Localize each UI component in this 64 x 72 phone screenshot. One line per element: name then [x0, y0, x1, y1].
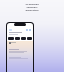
button[interactable] [15, 37, 20, 40]
staticText: AI-Powered Summary Generation [0, 3, 64, 12]
button[interactable] [8, 37, 14, 40]
button[interactable] [27, 37, 32, 40]
button[interactable]: Menu [9, 29, 12, 31]
button[interactable] [21, 37, 26, 40]
